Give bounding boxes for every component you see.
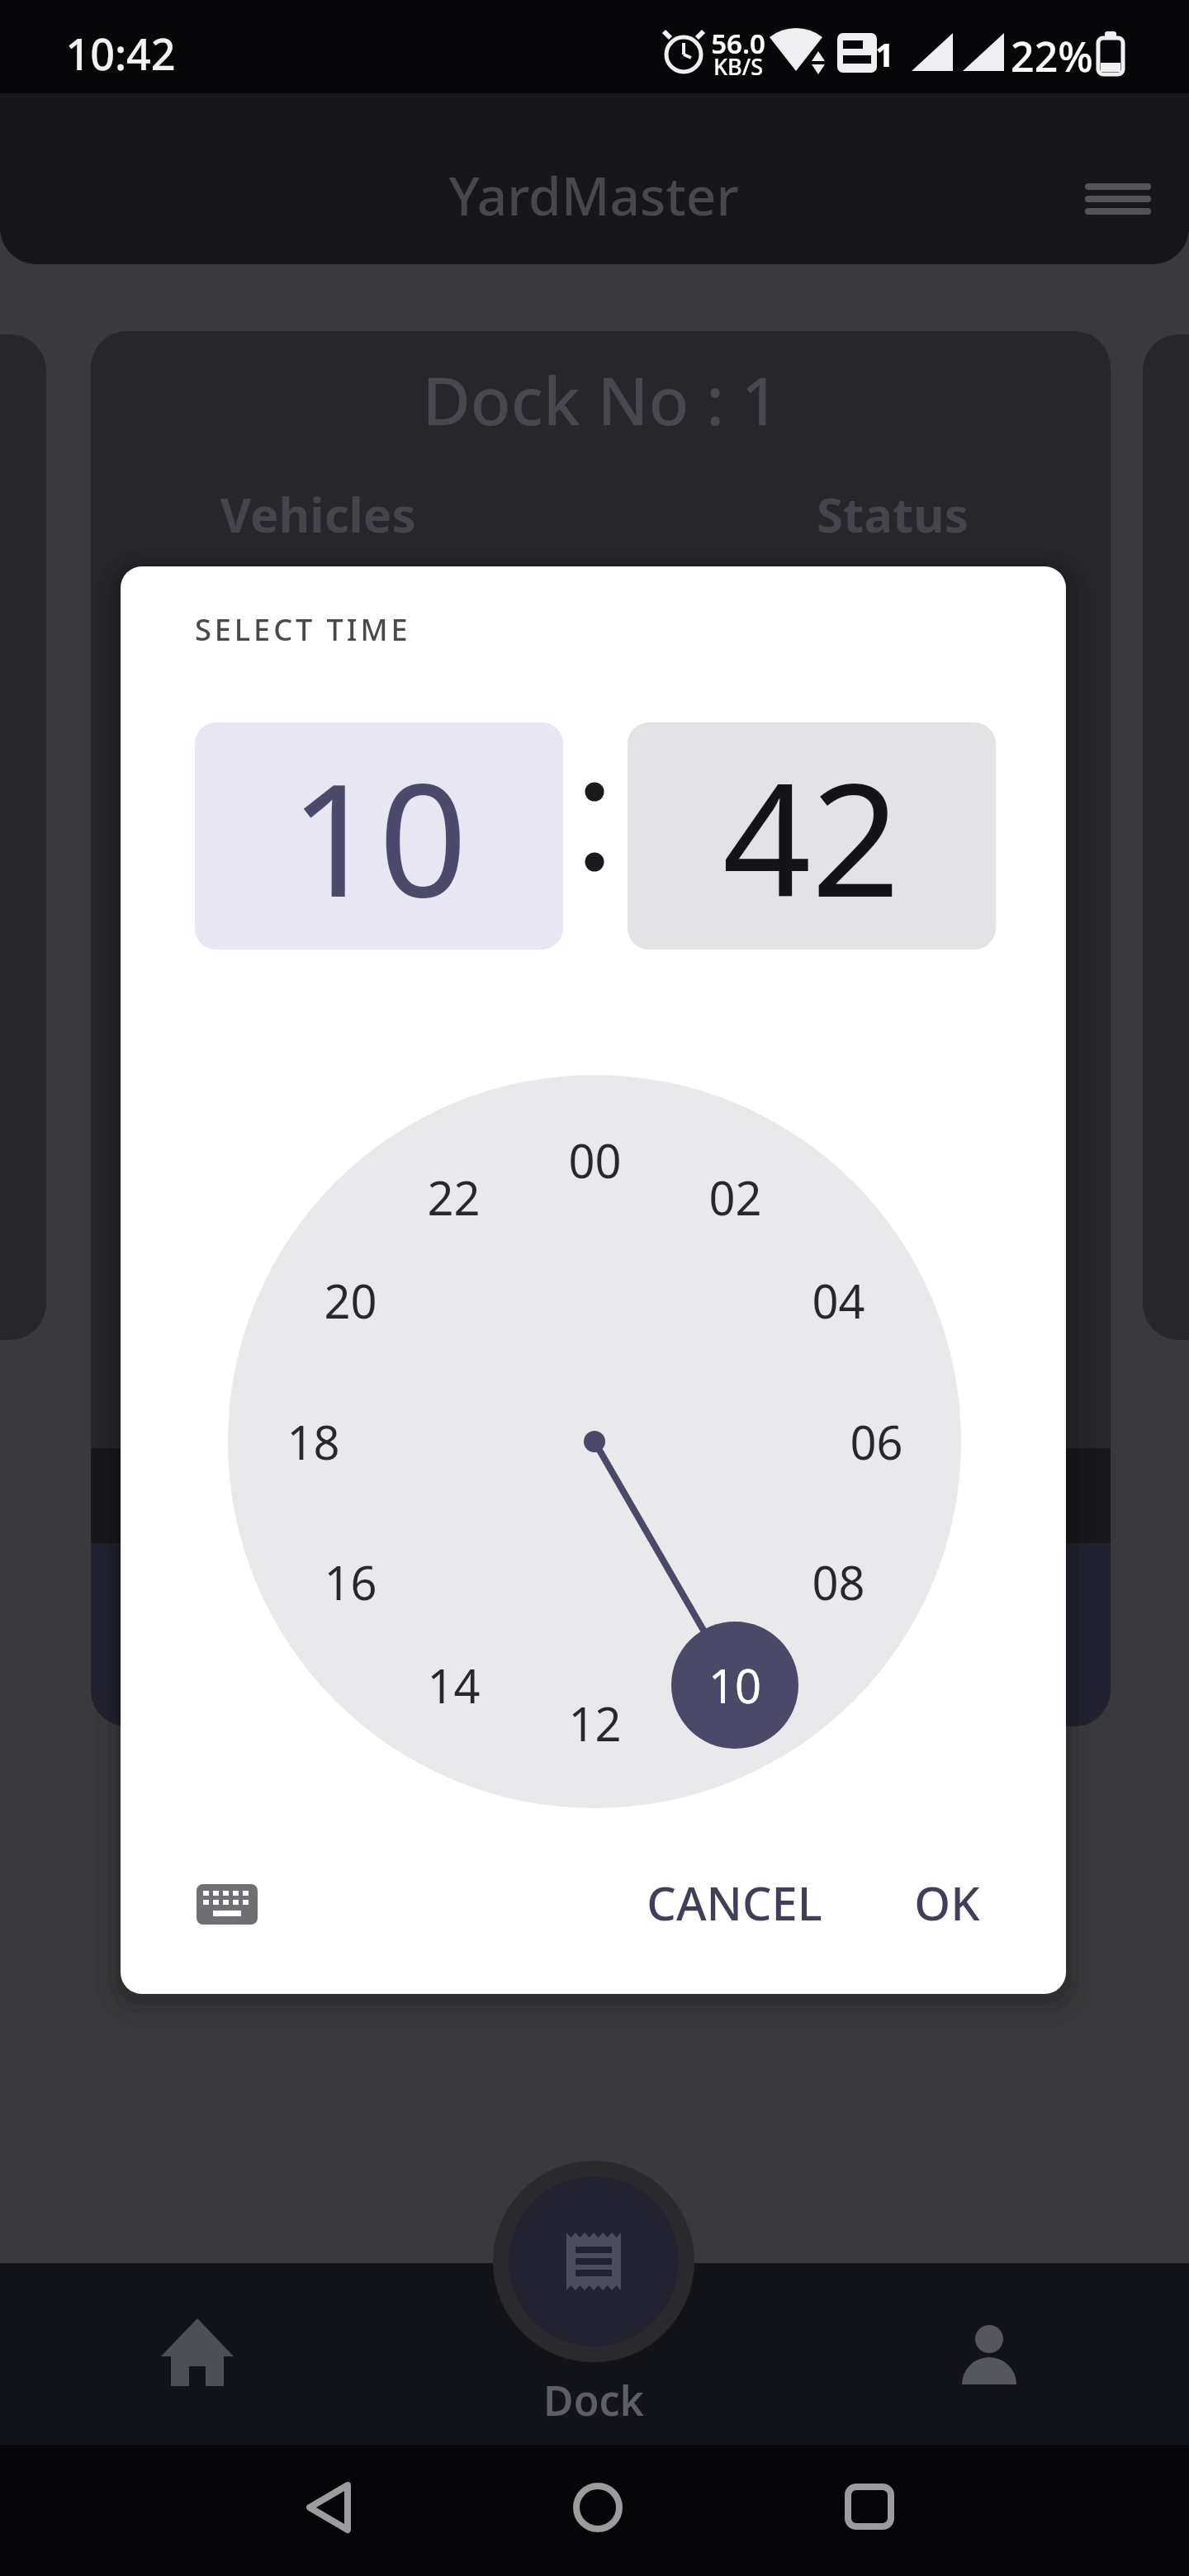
staticText: 42 [722, 731, 901, 942]
staticText: 10 [290, 731, 468, 942]
staticText: 22 [427, 1166, 481, 1229]
staticText: 10 [708, 1654, 762, 1717]
staticText: SELECT TIME [195, 609, 411, 650]
staticText: 56.0 [711, 25, 765, 58]
staticText: KB/S [713, 51, 763, 78]
staticText: Dock No : 1 [422, 354, 779, 444]
button[interactable] [148, 2304, 247, 2403]
staticText: 00 [568, 1129, 622, 1191]
staticText: YardMaster [448, 159, 739, 231]
staticText: 20 [324, 1269, 377, 1332]
staticText: Vehicles [220, 481, 416, 547]
button[interactable] [509, 2176, 679, 2346]
staticText: 08 [812, 1551, 865, 1613]
staticText: 10:42 [65, 24, 176, 82]
staticText: 04 [812, 1269, 865, 1332]
button[interactable]: 42 [628, 722, 996, 949]
staticText: Dock [543, 2372, 644, 2428]
button[interactable]: OK [877, 1868, 1017, 1937]
staticText: Status [817, 481, 969, 547]
staticText: 18 [287, 1410, 340, 1473]
button[interactable] [192, 1868, 263, 1939]
staticText: 16 [324, 1551, 377, 1613]
button[interactable]: 10 [671, 1622, 798, 1749]
staticText: CANCEL [647, 1871, 822, 1934]
button[interactable] [1073, 165, 1164, 231]
staticText: 12 [568, 1692, 622, 1754]
button[interactable] [940, 2308, 1039, 2398]
staticText: 06 [850, 1410, 903, 1473]
staticText: 02 [708, 1166, 762, 1229]
staticText: 22% [1011, 28, 1093, 78]
button[interactable]: 10 [195, 722, 563, 949]
staticText: 14 [427, 1654, 481, 1717]
staticText: OK [914, 1871, 980, 1934]
button[interactable]: CANCEL [627, 1868, 841, 1937]
staticText: 1 [875, 31, 894, 73]
